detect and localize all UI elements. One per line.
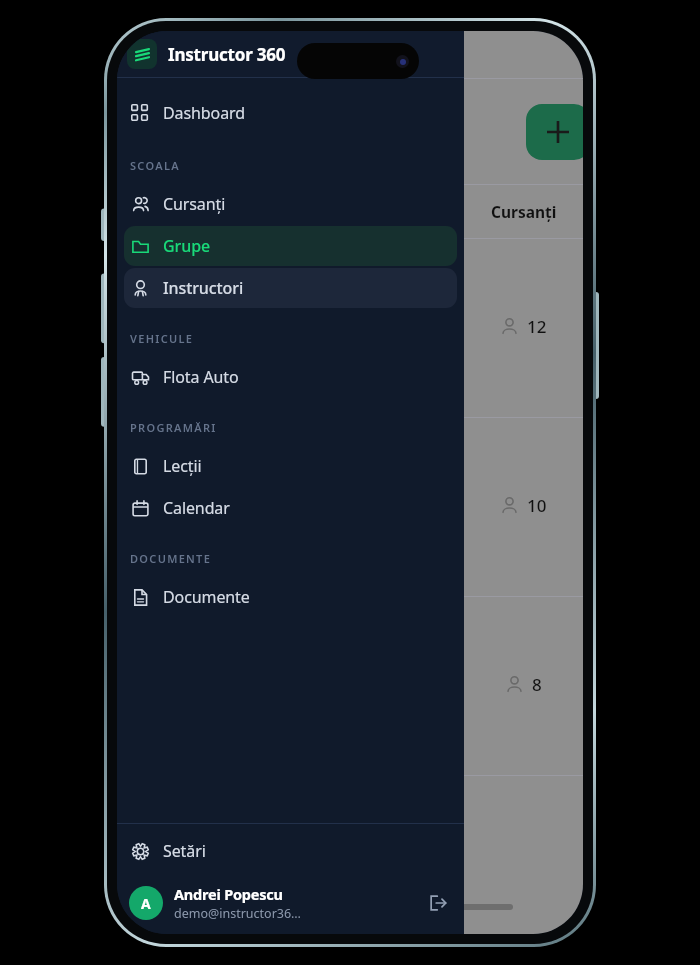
staticText: PROGRAMĂRI xyxy=(130,420,217,435)
staticText: A xyxy=(141,894,151,913)
staticText: 8 xyxy=(532,673,542,696)
button[interactable]: Calendar xyxy=(124,488,457,528)
staticText: 10 xyxy=(527,494,547,517)
staticText: SCOALA xyxy=(130,158,180,173)
button[interactable]: Lecții xyxy=(124,446,457,486)
button[interactable]: Flota Auto xyxy=(124,357,457,397)
staticText: Cursanți xyxy=(163,193,226,215)
button[interactable]: Documente xyxy=(124,577,457,617)
staticText: Cursanți xyxy=(491,201,557,222)
staticText: Documente xyxy=(163,586,250,608)
staticText: Dashboard xyxy=(163,102,245,124)
staticText: Flota Auto xyxy=(163,366,239,388)
staticText: 12 xyxy=(527,315,547,338)
staticText: demo@instructor36… xyxy=(174,905,301,922)
button[interactable]: Instructori xyxy=(124,268,457,308)
button[interactable]: Cursanți xyxy=(124,184,457,224)
staticText: VEHICULE xyxy=(130,331,194,346)
button[interactable]: Dashboard xyxy=(124,93,457,133)
button[interactable]: Adaugă xyxy=(526,104,583,160)
button[interactable]: A xyxy=(117,880,464,926)
staticText: Instructori xyxy=(163,277,244,299)
button[interactable]: Setări xyxy=(124,831,457,871)
button[interactable]: Deconectare xyxy=(422,887,454,919)
staticText: Setări xyxy=(163,840,206,862)
staticText: Calendar xyxy=(163,497,230,519)
staticText: DOCUMENTE xyxy=(130,551,212,566)
staticText: Andrei Popescu xyxy=(174,884,283,904)
staticText: Grupe xyxy=(163,235,211,257)
staticText: Lecții xyxy=(163,455,202,477)
staticText: Instructor 360 xyxy=(168,43,286,66)
button[interactable]: Grupe xyxy=(124,226,457,266)
